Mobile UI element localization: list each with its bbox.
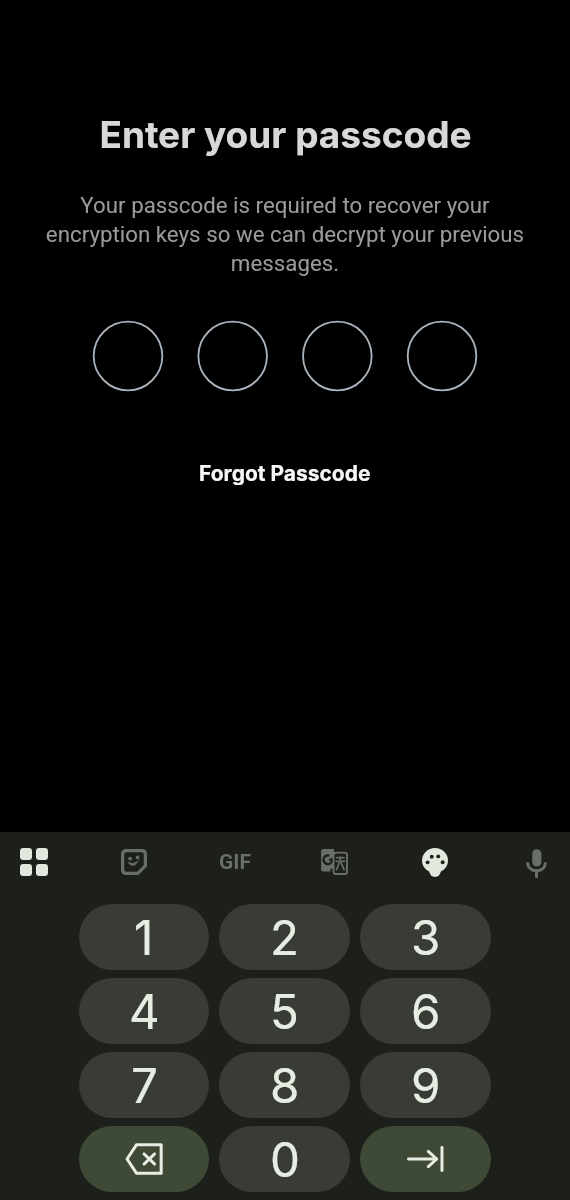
staticText: 7 [131,1057,158,1114]
staticText: 1 [134,909,154,966]
button[interactable]: 0 [219,1126,350,1192]
button[interactable]: Keyboard layout [8,836,60,888]
staticText: 8 [270,1057,300,1114]
staticText: 5 [270,983,299,1040]
button[interactable]: Themes [409,836,461,888]
staticText: Forgot Passcode [199,461,371,485]
button[interactable]: 9 [360,1052,491,1118]
staticText: Your passcode is required to recover you… [36,192,534,277]
button[interactable]: 4 [79,978,209,1044]
button[interactable]: GIF [209,836,261,888]
button[interactable]: 8 [219,1052,350,1118]
staticText: 2 [270,909,299,966]
button[interactable]: Voice input [510,836,562,888]
button[interactable]: 6 [360,978,491,1044]
button[interactable]: 5 [219,978,350,1044]
staticText: GIF [219,850,251,875]
staticText: 3 [411,909,441,966]
button[interactable]: Stickers [108,836,160,888]
button[interactable]: 7 [79,1052,209,1118]
staticText: 9 [411,1057,441,1114]
button[interactable]: Delete [79,1126,209,1192]
button[interactable]: Enter [360,1126,491,1192]
staticText: 6 [411,983,441,1040]
staticText: 0 [270,1131,300,1188]
button[interactable]: Passcode entry field [93,321,477,391]
staticText: 4 [129,983,160,1040]
button[interactable]: 1 [79,904,209,970]
button[interactable]: Translate [308,836,360,888]
button[interactable]: 3 [360,904,491,970]
staticText: Enter your passcode [99,112,472,157]
button[interactable]: Forgot Passcode [183,452,387,494]
button[interactable]: 2 [219,904,350,970]
